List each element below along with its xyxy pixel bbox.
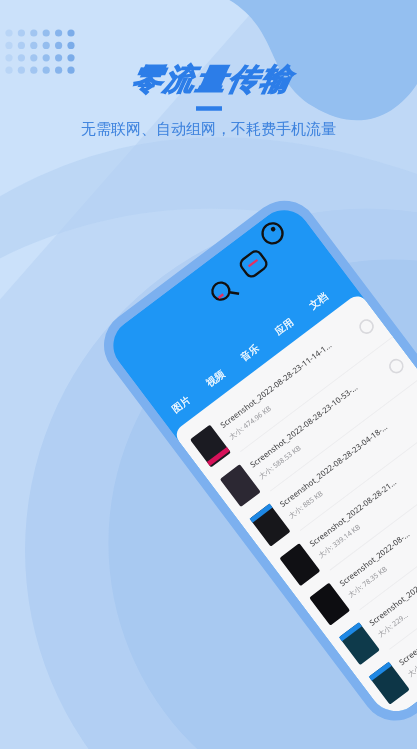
staticText: 无需联网、自动组网，不耗费手机流量 bbox=[81, 120, 336, 139]
staticText: 零流量传输 bbox=[129, 61, 289, 99]
